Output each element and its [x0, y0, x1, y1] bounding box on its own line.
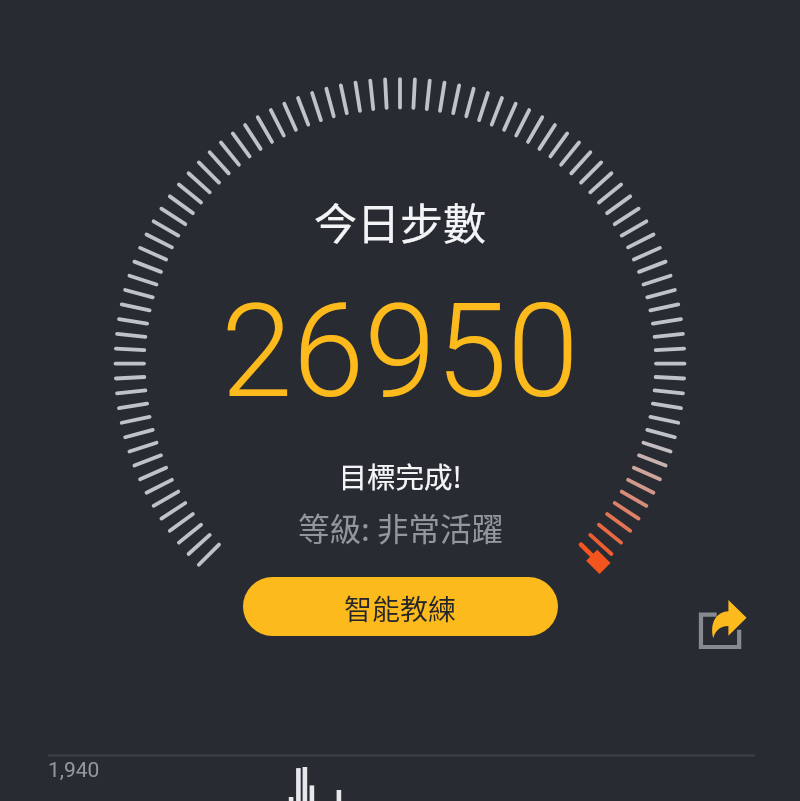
- staticText: 目標完成!: [338, 455, 462, 496]
- staticText: 1,940: [48, 758, 100, 783]
- button[interactable]: Share: [699, 599, 748, 648]
- staticText: 今日步數: [314, 190, 486, 252]
- staticText: 26950: [221, 276, 579, 427]
- button[interactable]: 智能教練: [243, 577, 558, 636]
- staticText: 智能教練: [344, 588, 457, 629]
- staticText: 等級: 非常活躍: [298, 504, 503, 550]
